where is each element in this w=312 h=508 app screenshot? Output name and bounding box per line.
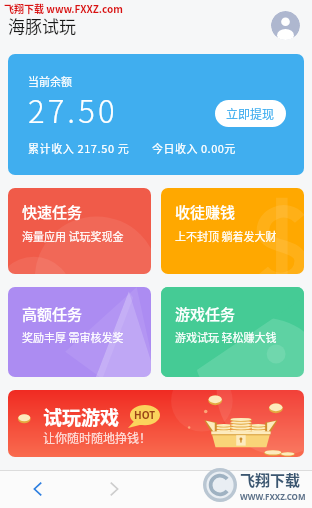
- staticText: 快速任务: [22, 201, 83, 223]
- staticText: 游戏试玩 轻松赚大钱: [175, 329, 277, 345]
- button[interactable]: Back: [0, 470, 76, 508]
- button[interactable]: 收徒赚钱: [161, 188, 304, 274]
- staticText: HOT: [134, 408, 156, 422]
- button[interactable]: 当前余额: [8, 54, 304, 175]
- staticText: 27.50: [28, 87, 118, 132]
- button[interactable]: 游戏任务: [161, 287, 304, 377]
- staticText: 高额任务: [22, 303, 83, 325]
- button[interactable]: 立即提现: [215, 100, 286, 127]
- staticText: 累计收入 217.50 元: [28, 140, 130, 156]
- staticText: 飞翔下载 www.FXXZ.com: [4, 1, 123, 15]
- staticText: 上不封顶 躺着发大财: [175, 228, 277, 244]
- staticText: 奖励丰厚 需审核发奖: [22, 329, 124, 345]
- button[interactable]: 试玩游戏: [8, 390, 304, 457]
- staticText: WWW.FXXZ.COM: [240, 491, 306, 502]
- staticText: 试玩游戏: [43, 403, 120, 431]
- button[interactable]: 快速任务: [8, 188, 151, 274]
- button[interactable]: 高额任务: [8, 287, 151, 377]
- staticText: 收徒赚钱: [175, 201, 236, 223]
- button[interactable]: Profile: [271, 11, 300, 40]
- staticText: 游戏任务: [175, 303, 236, 325]
- staticText: 立即提现: [226, 105, 275, 122]
- staticText: 让你随时随地挣钱！: [43, 429, 152, 446]
- staticText: 海豚试玩: [8, 13, 76, 38]
- staticText: 飞翔下载: [240, 469, 301, 491]
- staticText: 海量应用 试玩奖现金: [22, 228, 124, 244]
- button[interactable]: Forward: [76, 470, 152, 508]
- staticText: 今日收入 0.00元: [152, 140, 236, 156]
- staticText: 当前余额: [28, 73, 72, 89]
